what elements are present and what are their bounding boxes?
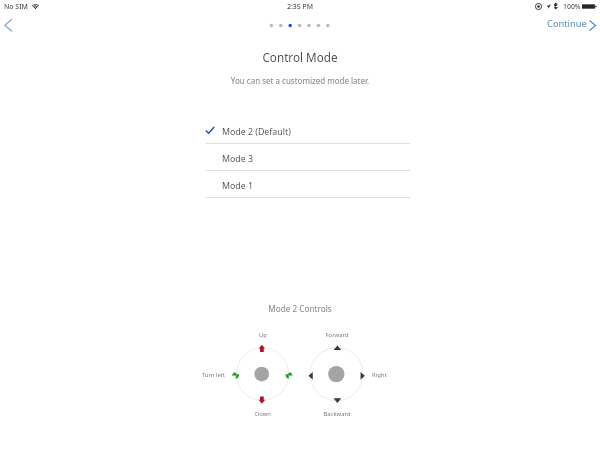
button[interactable]: Continue	[542, 13, 600, 37]
staticText: You can set a customized mode later.	[0, 75, 600, 86]
button[interactable]: Back	[0, 14, 22, 36]
staticText: Mode 3	[222, 153, 253, 165]
staticText: Mode 1	[222, 180, 253, 192]
staticText: Turn left	[145, 371, 225, 379]
staticText: Backward	[297, 410, 377, 418]
staticText: Up	[223, 331, 303, 339]
staticText: Continue	[547, 17, 587, 30]
staticText: Forward	[297, 331, 377, 339]
staticText: Right	[372, 371, 387, 379]
button[interactable]: Mode 3	[205, 144, 410, 171]
staticText: No SIM	[4, 2, 28, 11]
staticText: Mode 2 Controls	[0, 303, 600, 314]
staticText: Mode 2 (Default)	[222, 126, 291, 138]
staticText: Control Mode	[0, 49, 600, 65]
staticText: 2:35 PM	[287, 2, 314, 11]
staticText: 100%	[563, 2, 581, 11]
button[interactable]: Mode 1	[205, 171, 410, 198]
button[interactable]: Mode 2 (Default)	[205, 117, 410, 144]
staticText: Down	[223, 410, 303, 418]
